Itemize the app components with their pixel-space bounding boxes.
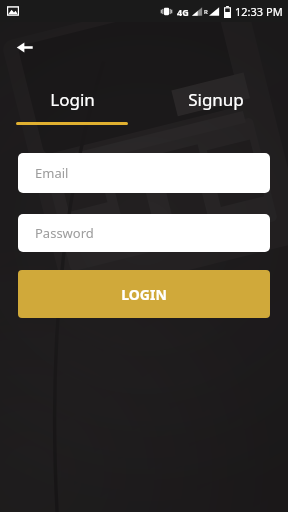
button[interactable]: Email: [18, 153, 270, 193]
button[interactable]: Signup: [144, 88, 288, 125]
staticText: Password: [35, 224, 94, 242]
button[interactable]: Password: [18, 214, 270, 252]
staticText: Login: [50, 88, 95, 111]
button[interactable]: Login: [0, 88, 144, 125]
button[interactable]: Back: [8, 30, 42, 64]
staticText: R: [204, 8, 208, 16]
staticText: LOGIN: [121, 285, 167, 304]
staticText: 4G: [177, 6, 189, 18]
staticText: Signup: [188, 88, 244, 111]
staticText: 12:33 PM: [235, 4, 283, 19]
button[interactable]: LOGIN: [18, 270, 270, 318]
staticText: Email: [35, 164, 69, 182]
